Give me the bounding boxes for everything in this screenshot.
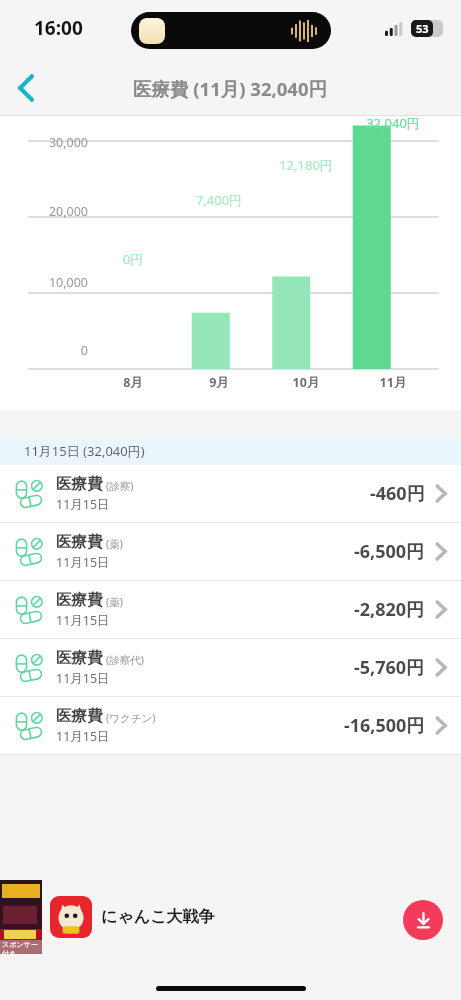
staticText: 11月15日 (56, 554, 110, 571)
staticText: -5,760円 (354, 655, 425, 680)
staticText: (ワクチン) (106, 711, 156, 725)
staticText: 0円 (88, 250, 178, 268)
staticText: (薬) (106, 595, 123, 609)
staticText: 12,180円 (261, 156, 351, 174)
staticText: (薬) (106, 537, 123, 551)
staticText: (診察代) (106, 653, 144, 667)
button[interactable]: 医療費 (0, 581, 461, 638)
staticText: 10月 (261, 374, 351, 391)
staticText: 医療費 (56, 532, 103, 552)
button[interactable]: 医療費 (0, 465, 461, 522)
staticText: にゃんこ大戦争 (101, 907, 215, 927)
staticText: 11月15日 (56, 728, 110, 745)
staticText: 10,000 (0, 274, 88, 291)
staticText: 11月15日 (56, 496, 110, 513)
staticText: 53 (416, 21, 429, 36)
staticText: 医療費 (56, 474, 103, 494)
button[interactable]: 医療費 (0, 639, 461, 696)
staticText: -16,500円 (344, 713, 425, 738)
staticText: 医療費 (56, 590, 103, 610)
staticText: 32,040円 (348, 114, 438, 132)
staticText: 8月 (88, 374, 178, 391)
staticText: 医療費 (56, 648, 103, 668)
staticText: 9月 (174, 374, 264, 391)
staticText: 20,000 (0, 203, 88, 220)
staticText: 7,400円 (174, 191, 264, 209)
staticText: 11月15日 (56, 670, 110, 687)
staticText: 医療費 (56, 706, 103, 726)
staticText: -6,500円 (354, 539, 425, 564)
staticText: 11月 (348, 374, 438, 391)
staticText: -460円 (370, 481, 425, 506)
button[interactable]: 医療費 (0, 697, 461, 754)
staticText: 医療費 (11月) 32,040円 (133, 76, 328, 101)
staticText: -2,820円 (354, 597, 425, 622)
button[interactable]: Download (403, 900, 443, 940)
button[interactable]: Back (0, 62, 52, 114)
staticText: スポンサー付き (2, 940, 42, 954)
staticText: 30,000 (0, 134, 88, 151)
button[interactable]: スポンサー付き (0, 872, 461, 962)
staticText: 11月15日 (56, 612, 110, 629)
staticText: (診察) (106, 479, 134, 493)
staticText: 0 (0, 342, 88, 359)
button[interactable]: 医療費 (0, 523, 461, 580)
staticText: 11月15日 (32,040円) (24, 442, 145, 460)
staticText: 16:00 (34, 15, 83, 41)
